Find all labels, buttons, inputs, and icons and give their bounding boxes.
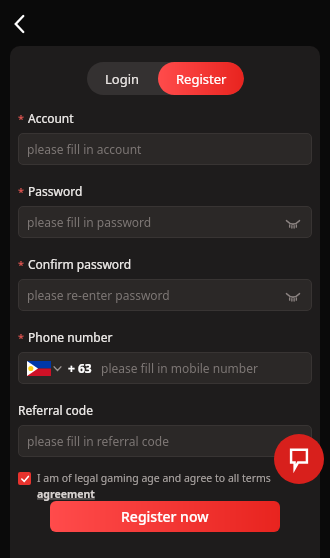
staticText: I am of legal gaming age and agree to al… [37, 471, 271, 485]
button[interactable]: Select country code [18, 352, 312, 384]
staticText: Account [28, 110, 74, 126]
button[interactable]: please fill in referral code [18, 425, 312, 457]
staticText: please re-enter password [27, 287, 283, 303]
staticText: * [18, 184, 24, 199]
button[interactable]: Login [87, 62, 158, 95]
button[interactable]: Show password [283, 213, 303, 231]
staticText: Register [176, 70, 227, 88]
button[interactable]: please fill in account [18, 133, 312, 165]
staticText: please fill in referral code [27, 433, 303, 449]
button[interactable]: Customer support chat [274, 434, 324, 484]
staticText: Register now [121, 507, 209, 526]
button[interactable]: please re-enter password [18, 279, 312, 311]
staticText: Confirm password [28, 256, 132, 272]
staticText: + 63 [68, 360, 92, 376]
button[interactable]: Register [158, 62, 244, 95]
button[interactable]: Show password [283, 286, 303, 304]
staticText: please fill in mobile number [101, 360, 303, 376]
button[interactable]: Back [6, 11, 32, 37]
staticText: please fill in password [27, 214, 283, 230]
staticText: * [18, 111, 24, 126]
button[interactable]: Register now [50, 501, 280, 532]
button[interactable]: I am of legal gaming age and agree to al… [18, 471, 312, 501]
staticText: Referral code [18, 402, 93, 418]
button[interactable]: please fill in password [18, 206, 312, 238]
staticText: Login [105, 70, 140, 88]
staticText: Password [28, 183, 83, 199]
button[interactable]: Select country code [27, 360, 101, 376]
staticText: * [18, 330, 24, 345]
staticText: Phone number [28, 329, 113, 345]
button[interactable]: agreement [37, 487, 95, 501]
staticText: * [18, 257, 24, 272]
staticText: please fill in account [27, 141, 303, 157]
